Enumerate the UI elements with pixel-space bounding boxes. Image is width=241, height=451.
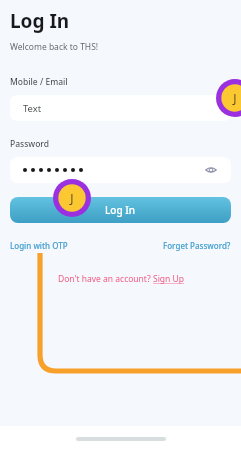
staticText: Mobile / Email	[10, 76, 68, 88]
staticText: Don't have an account?	[58, 273, 153, 285]
button[interactable]: Log In	[10, 197, 231, 223]
button[interactable]: Account avatar J	[216, 79, 241, 117]
button[interactable]: Show password	[204, 163, 218, 177]
staticText: Login with OTP	[10, 240, 68, 251]
button[interactable]: Forget Password?	[163, 240, 231, 251]
staticText: Text	[23, 102, 42, 115]
staticText: Welcome back to THS!	[10, 41, 99, 53]
button[interactable]: Sign Up	[153, 273, 184, 285]
staticText: Password	[10, 138, 50, 150]
button[interactable]: Text	[10, 95, 231, 121]
button[interactable]: Login with OTP	[10, 240, 68, 251]
staticText: J	[233, 90, 237, 106]
staticText: Log In	[105, 203, 136, 217]
button[interactable]: Account avatar J	[53, 179, 91, 217]
staticText: Sign Up	[153, 273, 184, 285]
button[interactable]: Show password	[10, 157, 231, 183]
staticText: Log In	[10, 8, 70, 34]
staticText: Forget Password?	[163, 240, 231, 251]
staticText: J	[70, 190, 74, 206]
